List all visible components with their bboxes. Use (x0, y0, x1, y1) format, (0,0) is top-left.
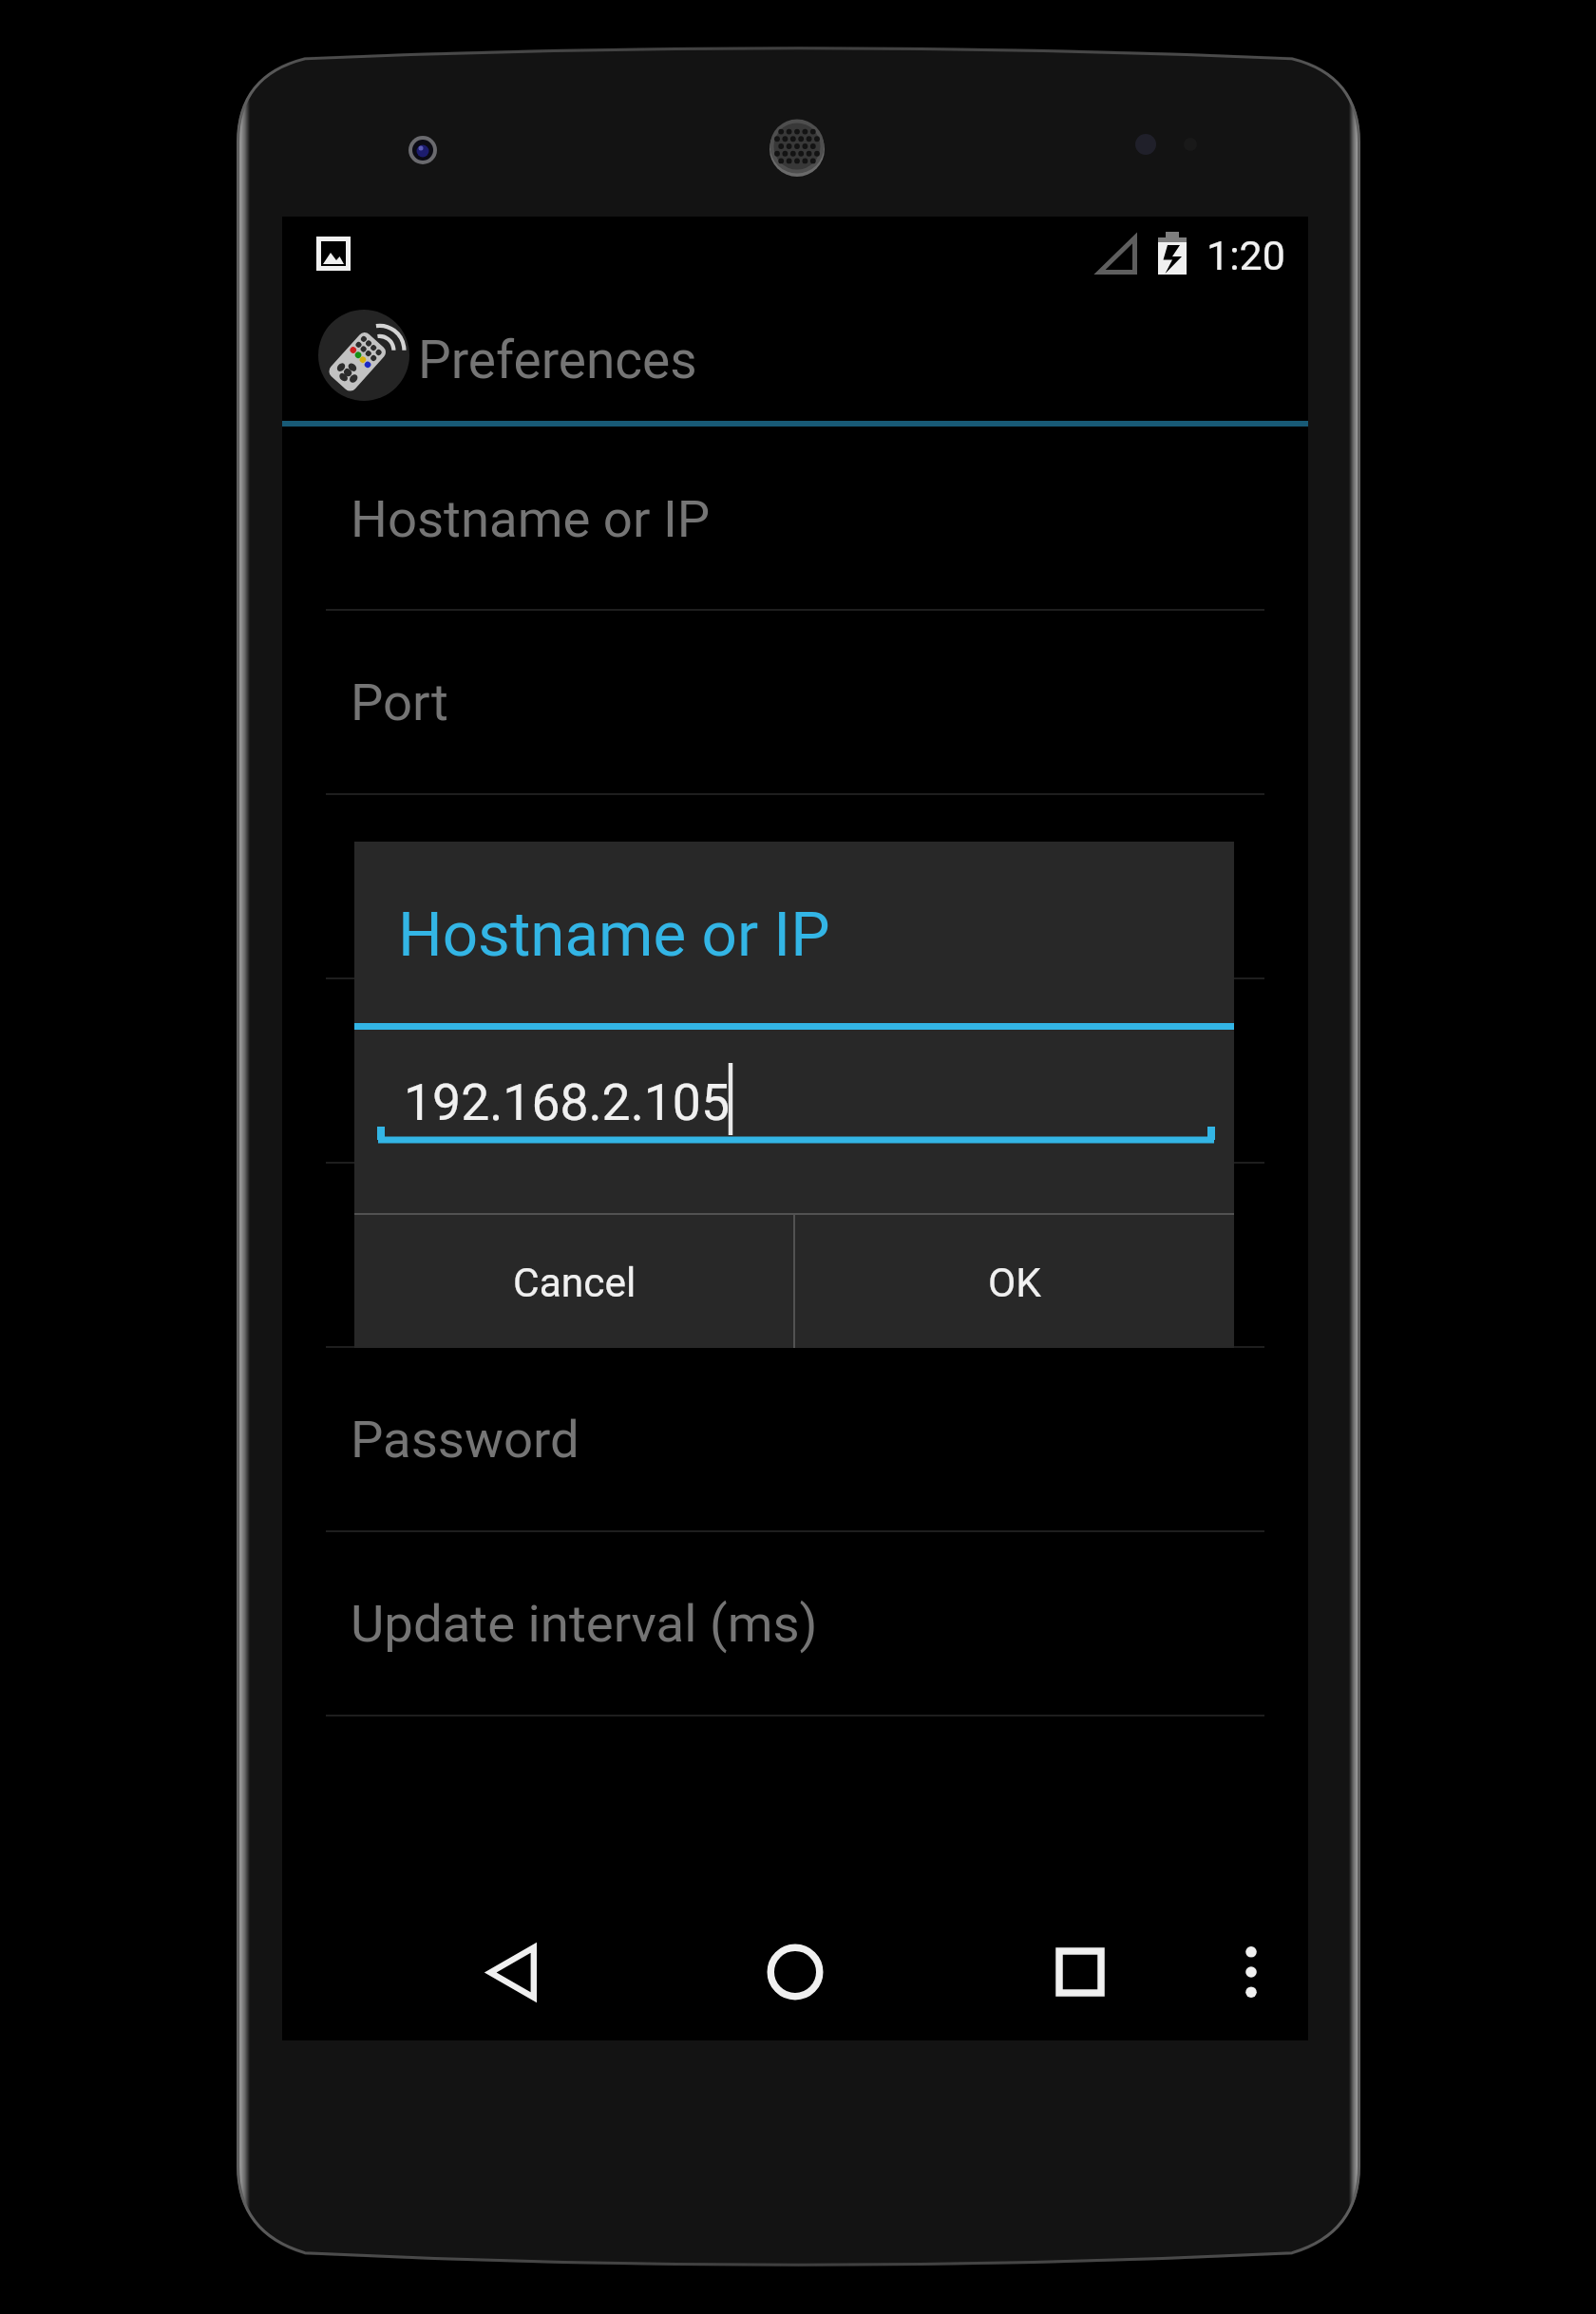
button[interactable]: More options (1187, 1904, 1315, 2040)
button[interactable]: Home (727, 1904, 864, 2040)
staticText: Preferences (418, 330, 697, 390)
button[interactable] (282, 795, 1308, 979)
button[interactable]: Cancel (354, 1218, 794, 1348)
button[interactable] (282, 979, 1308, 1164)
button[interactable]: OK (794, 1218, 1234, 1348)
staticText: 192.168.2.105 (404, 1072, 730, 1132)
button[interactable]: Hostname or IP (282, 428, 1308, 611)
button[interactable]: Update interval (ms) (282, 1532, 1308, 1717)
staticText: Hostname or IP (398, 898, 830, 971)
button[interactable]: Back (444, 1904, 580, 2040)
button[interactable]: Password (282, 1348, 1308, 1532)
staticText: Password (351, 1409, 579, 1470)
staticText: 1:20 (1206, 232, 1285, 279)
staticText: Cancel (513, 1260, 636, 1307)
button[interactable] (282, 1164, 1308, 1348)
staticText: Hostname or IP (351, 488, 711, 549)
button[interactable]: Port (282, 611, 1308, 795)
button[interactable]: Preferences (282, 290, 1308, 421)
staticText: Update interval (ms) (351, 1593, 818, 1654)
staticText: Port (351, 672, 448, 732)
button[interactable]: Recents (1012, 1904, 1149, 2040)
staticText: OK (988, 1260, 1041, 1307)
